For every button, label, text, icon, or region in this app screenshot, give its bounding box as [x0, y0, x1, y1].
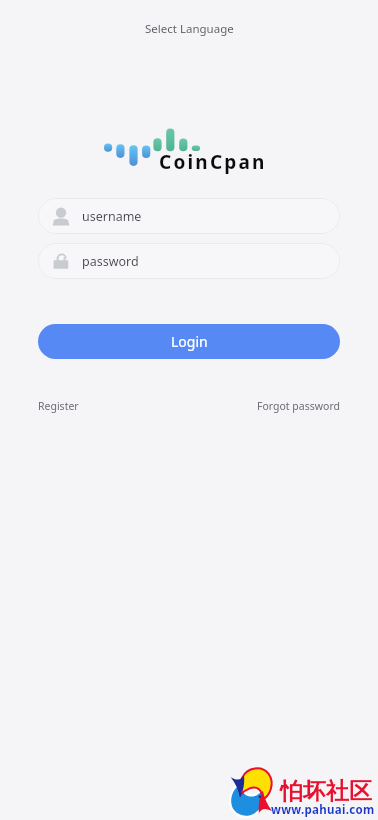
button[interactable]: username — [38, 198, 340, 234]
button[interactable]: password — [38, 243, 340, 279]
staticText: username — [82, 208, 142, 225]
button[interactable]: Forgot password — [257, 399, 340, 413]
button[interactable]: Select Language — [135, 18, 244, 40]
staticText: CoinCpan — [159, 149, 267, 175]
staticText: www.pahuai.com — [271, 802, 375, 818]
staticText: password — [82, 253, 139, 270]
staticText: Login — [171, 332, 208, 351]
staticText: Select Language — [145, 21, 234, 37]
staticText: 怕坏社区 — [280, 777, 372, 806]
button[interactable]: Login — [38, 324, 340, 359]
button[interactable]: Register — [38, 399, 79, 413]
